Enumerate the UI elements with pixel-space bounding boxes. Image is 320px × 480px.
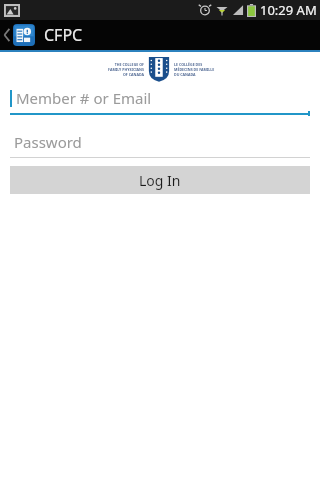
staticText: THE COLLEGE OF [94, 62, 144, 67]
button[interactable]: Back [0, 22, 37, 48]
staticText: CFPC [44, 24, 83, 46]
staticText: OF CANADA [94, 72, 144, 77]
staticText: Member # or Email [16, 88, 152, 108]
button[interactable]: Member # or Email [0, 88, 320, 118]
button[interactable]: Log In [10, 166, 310, 194]
staticText: DU CANADA [174, 72, 226, 77]
staticText: FAMILY PHYSICIANS [94, 67, 144, 72]
staticText: LE COLLÈGE DES [174, 62, 226, 67]
staticText: Log In [139, 171, 181, 190]
button[interactable]: Password [0, 132, 320, 158]
staticText: 10:29 AM [260, 1, 317, 19]
staticText: Password [14, 132, 82, 152]
staticText: MÉDECINS DE FAMILLE [174, 67, 226, 72]
